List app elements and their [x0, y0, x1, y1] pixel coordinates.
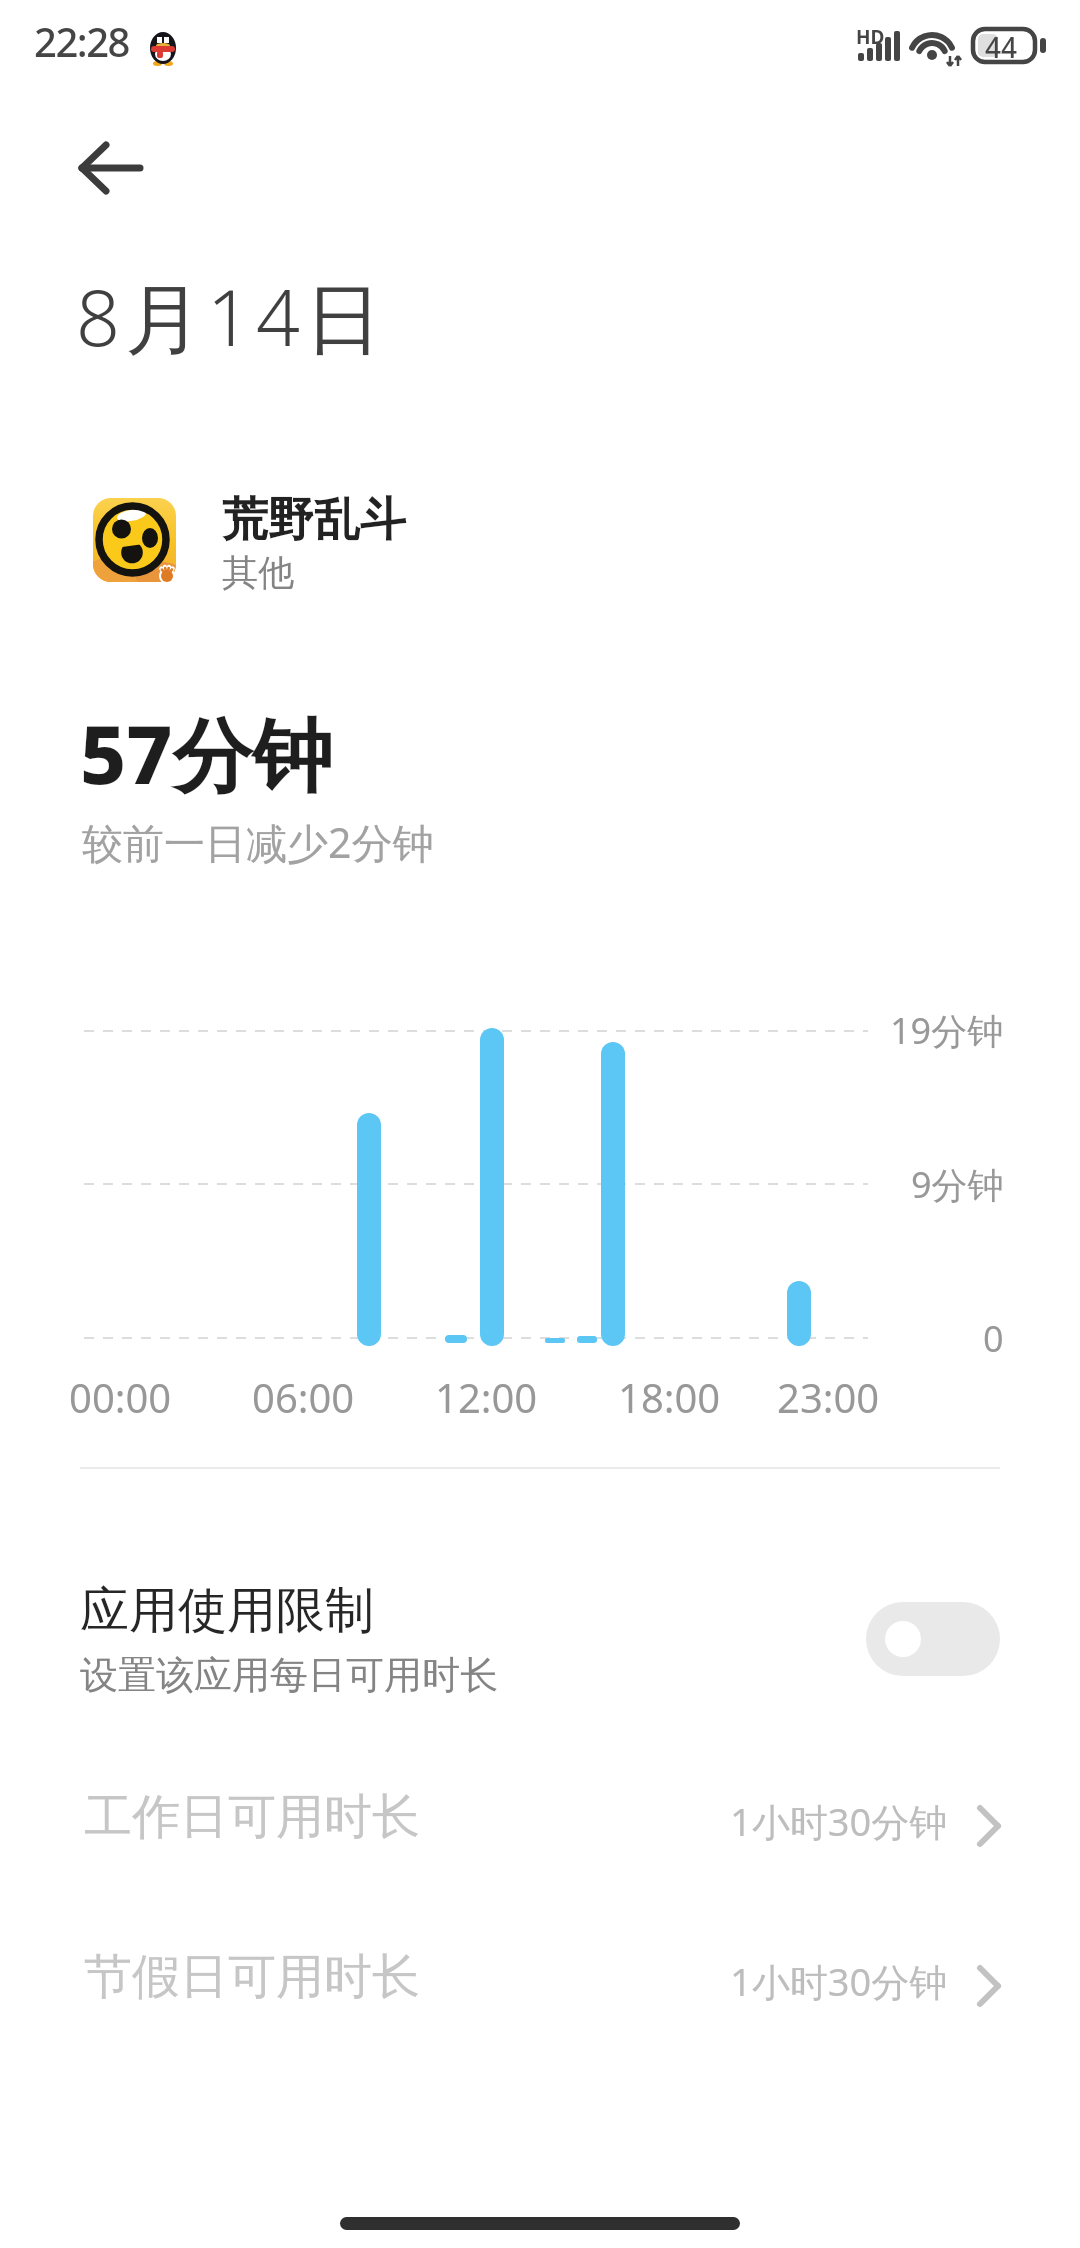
staticText: 9分钟	[911, 1160, 1004, 1209]
staticText: 工作日可用时长	[84, 1787, 420, 1847]
button[interactable]: 工作日可用时长	[56, 1768, 1024, 1888]
button[interactable]: 节假日可用时长	[56, 1928, 1024, 2048]
staticText: 12:00	[435, 1370, 538, 1424]
staticText: 节假日可用时长	[84, 1947, 420, 2007]
staticText: 荒野乱斗	[222, 491, 406, 549]
button[interactable]: 荒野乱斗	[88, 488, 528, 592]
staticText: 其他	[222, 550, 294, 595]
staticText: HD	[856, 24, 885, 50]
staticText: 较前一日减少2分钟	[82, 814, 434, 870]
staticText: 06:00	[252, 1370, 355, 1424]
staticText: 18:00	[618, 1370, 721, 1424]
staticText: 00:00	[69, 1370, 172, 1424]
button[interactable]	[56, 130, 152, 202]
button[interactable]: 应用使用限制	[56, 1556, 1024, 1706]
staticText: 应用使用限制	[80, 1580, 374, 1642]
staticText: 44	[985, 28, 1018, 66]
staticText: 1小时30分钟	[730, 1795, 948, 1847]
staticText: 23:00	[777, 1370, 880, 1424]
staticText: 57分钟	[80, 698, 333, 807]
staticText: 19分钟	[890, 1006, 1004, 1055]
staticText: 0	[983, 1314, 1004, 1363]
staticText: 8月14日	[76, 264, 387, 369]
staticText: 设置该应用每日可用时长	[80, 1651, 498, 1699]
staticText: 22:28	[34, 14, 129, 68]
staticText: 1小时30分钟	[730, 1955, 948, 2007]
